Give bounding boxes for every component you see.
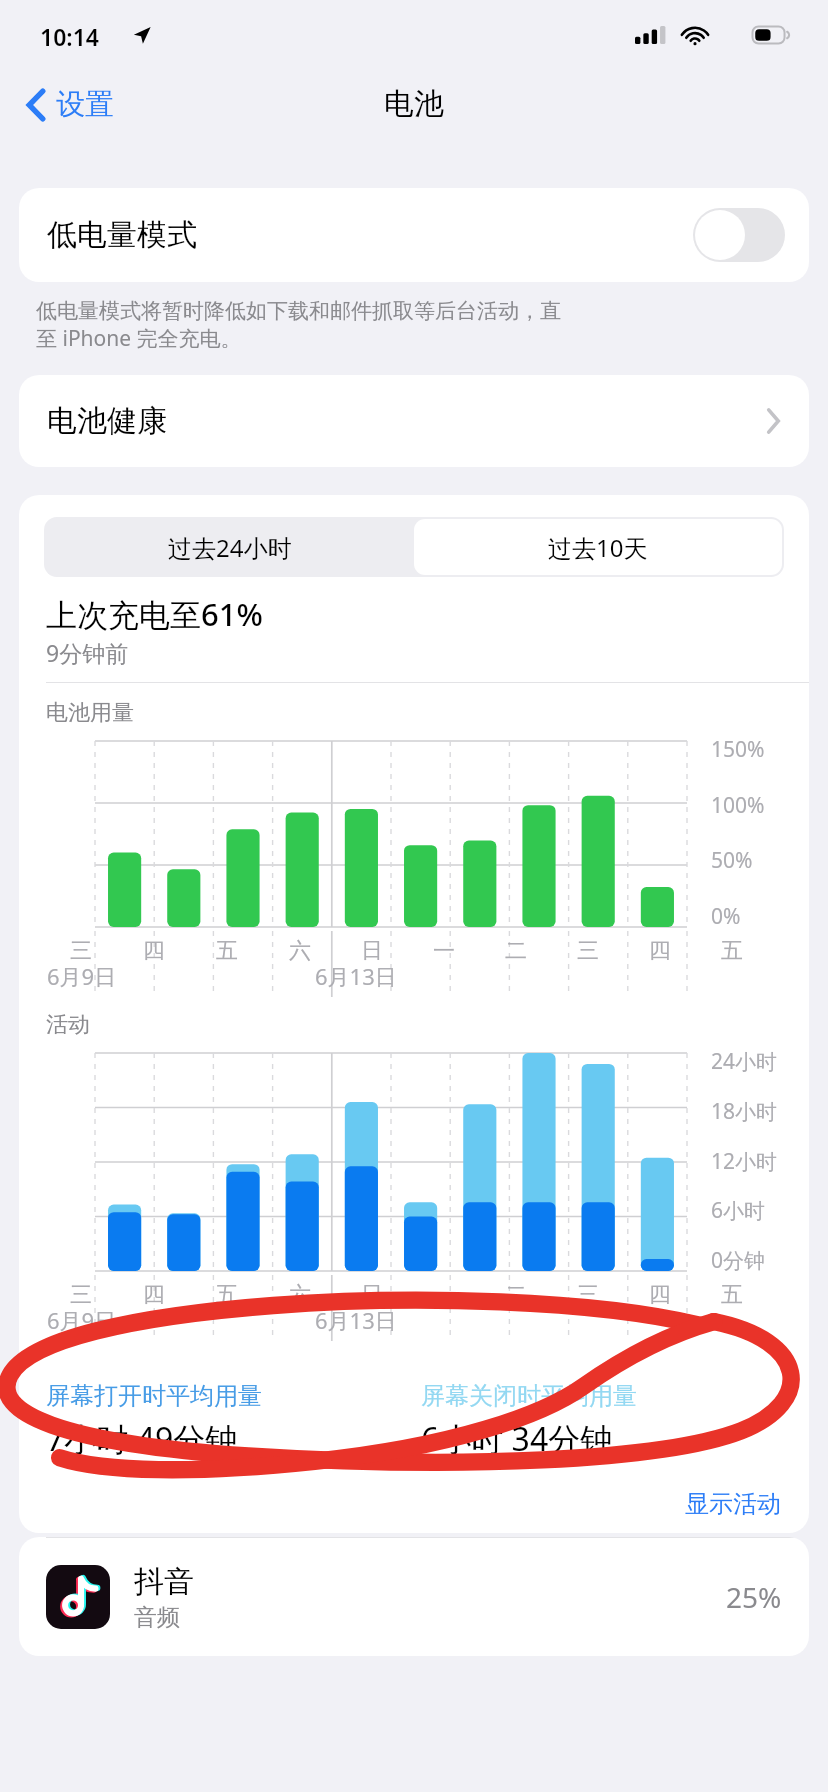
staticText: 24小时 bbox=[711, 1047, 778, 1076]
staticText: 低电量模式 bbox=[47, 216, 197, 254]
staticText: 6小时 34分钟 bbox=[421, 1417, 613, 1461]
staticText: 五 bbox=[721, 1281, 743, 1309]
staticText: 四 bbox=[649, 1281, 671, 1309]
staticText: 至 iPhone 完全充电。 bbox=[36, 324, 242, 353]
staticText: 50% bbox=[711, 846, 753, 875]
staticText: 12小时 bbox=[711, 1147, 778, 1176]
staticText: 7小时 49分钟 bbox=[46, 1417, 238, 1461]
staticText: 日 bbox=[361, 1281, 383, 1309]
staticText: 电池健康 bbox=[47, 402, 167, 440]
staticText: 四 bbox=[143, 937, 165, 965]
button[interactable]: 过去24小时 bbox=[46, 519, 414, 575]
staticText: 6月9日 bbox=[47, 1305, 117, 1335]
staticText: 三 bbox=[70, 937, 92, 965]
staticText: 过去10天 bbox=[548, 531, 648, 564]
staticText: 音频 bbox=[134, 1603, 180, 1632]
staticText: 18小时 bbox=[711, 1097, 778, 1126]
staticText: 三 bbox=[70, 1281, 92, 1309]
staticText: 二 bbox=[505, 937, 527, 965]
staticText: 五 bbox=[216, 937, 238, 965]
staticText: 6月13日 bbox=[315, 961, 397, 991]
button[interactable]: 显示活动 bbox=[679, 1483, 787, 1525]
staticText: 0分钟 bbox=[711, 1246, 766, 1275]
staticText: 上次充电至61% bbox=[46, 593, 263, 635]
staticText: 六 bbox=[289, 937, 311, 965]
staticText: 五 bbox=[721, 937, 743, 965]
staticText: 显示活动 bbox=[685, 1489, 781, 1519]
staticText: 电池 bbox=[384, 85, 444, 123]
staticText: 设置 bbox=[56, 86, 114, 123]
staticText: 一 bbox=[433, 1281, 455, 1309]
staticText: 屏幕打开时平均用量 bbox=[46, 1381, 262, 1411]
button[interactable]: Low Power Mode toggle bbox=[693, 208, 785, 262]
staticText: 四 bbox=[649, 937, 671, 965]
button[interactable]: 设置 bbox=[18, 78, 122, 131]
staticText: 低电量模式将暂时降低如下载和邮件抓取等后台活动，直 bbox=[36, 298, 561, 324]
button[interactable]: 电池健康 bbox=[19, 375, 809, 467]
button[interactable]: 过去10天 bbox=[414, 519, 782, 575]
staticText: 9分钟前 bbox=[46, 637, 129, 668]
staticText: 10:14 bbox=[40, 21, 99, 52]
staticText: 日 bbox=[361, 937, 383, 965]
staticText: 四 bbox=[143, 1281, 165, 1309]
button[interactable]: 抖音 bbox=[19, 1538, 809, 1656]
staticText: 抖音 bbox=[134, 1563, 194, 1601]
staticText: 6月9日 bbox=[47, 961, 117, 991]
staticText: 二 bbox=[505, 1281, 527, 1309]
staticText: 活动 bbox=[46, 1011, 90, 1039]
staticText: 0% bbox=[711, 902, 741, 931]
staticText: 6小时 bbox=[711, 1196, 766, 1225]
staticText: 100% bbox=[711, 791, 765, 820]
staticText: 一 bbox=[433, 937, 455, 965]
staticText: 屏幕关闭时平均用量 bbox=[421, 1381, 637, 1411]
staticText: 25% bbox=[726, 1578, 782, 1616]
staticText: 电池用量 bbox=[46, 699, 134, 727]
staticText: 五 bbox=[216, 1281, 238, 1309]
staticText: 150% bbox=[711, 735, 765, 764]
staticText: 三 bbox=[577, 1281, 599, 1309]
staticText: 6月13日 bbox=[315, 1305, 397, 1335]
staticText: 六 bbox=[289, 1281, 311, 1309]
button[interactable]: 低电量模式 bbox=[19, 188, 809, 282]
staticText: 过去24小时 bbox=[168, 531, 292, 564]
staticText: 三 bbox=[577, 937, 599, 965]
